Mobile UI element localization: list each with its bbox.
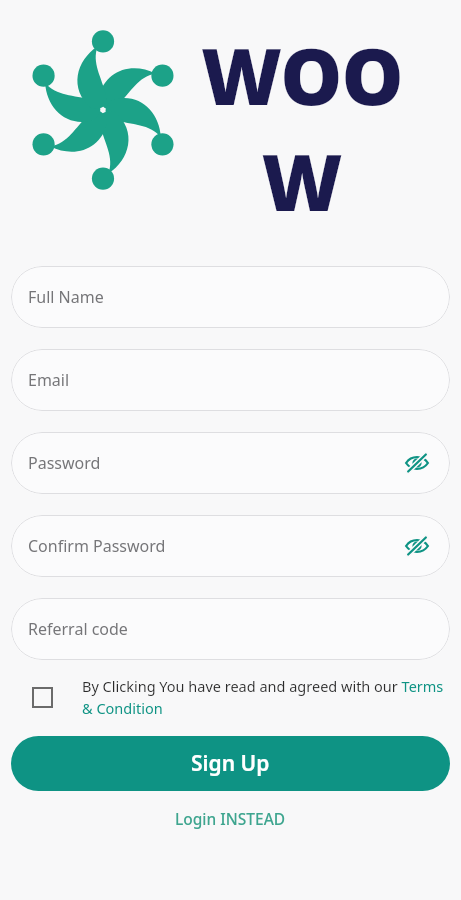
staticText: Email bbox=[28, 369, 70, 391]
button[interactable]: Toggle password visibility bbox=[400, 446, 434, 480]
button[interactable]: Agree to terms checkbox bbox=[0, 676, 461, 718]
staticText: Login INSTEAD bbox=[175, 808, 286, 829]
staticText: WOOW bbox=[179, 22, 424, 234]
button[interactable]: Full Name bbox=[11, 266, 450, 328]
staticText: Referral code bbox=[28, 618, 128, 640]
button[interactable]: Agree to terms checkbox bbox=[32, 687, 53, 708]
button[interactable]: Confirm Password bbox=[11, 515, 450, 577]
button[interactable]: Sign Up bbox=[11, 736, 450, 791]
button[interactable]: Password bbox=[11, 432, 450, 494]
button[interactable]: Toggle password visibility bbox=[400, 529, 434, 563]
button[interactable]: Referral code bbox=[11, 598, 450, 660]
staticText: By Clicking You have read and agreed wit… bbox=[82, 676, 445, 718]
button[interactable]: Login INSTEAD bbox=[155, 801, 306, 836]
staticText: Full Name bbox=[28, 286, 104, 308]
staticText: Confirm Password bbox=[28, 535, 166, 557]
staticText: Password bbox=[28, 452, 101, 474]
button[interactable]: Email bbox=[11, 349, 450, 411]
staticText: Sign Up bbox=[191, 749, 270, 778]
